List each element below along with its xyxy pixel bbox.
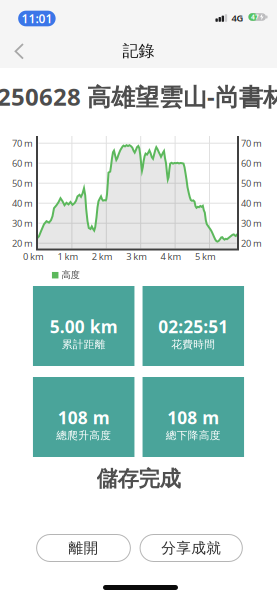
staticText: 11:01 (21, 10, 52, 26)
staticText: 4 km (161, 250, 182, 263)
staticText: 20 m (12, 237, 33, 249)
staticText: 高度 (61, 269, 79, 281)
staticText: 2 km (92, 250, 113, 263)
staticText: 40 m (12, 197, 33, 209)
staticText: 0 km (23, 250, 44, 263)
staticText: 分享成就 (161, 539, 221, 557)
staticText: 總下降高度 (166, 429, 221, 442)
staticText: 30 m (12, 217, 33, 229)
staticText: 3 km (126, 250, 147, 263)
staticText: 花費時間 (171, 338, 215, 351)
staticText: 5 km (195, 250, 216, 263)
staticText: 108 m (58, 406, 110, 429)
staticText: 累計距離 (62, 338, 106, 351)
staticText: 儲存完成 (96, 466, 180, 492)
button[interactable]: 11:01 (18, 11, 56, 26)
button[interactable]: 離開 (36, 534, 131, 562)
staticText: 47 (251, 13, 259, 21)
staticText: 108 m (167, 406, 219, 429)
staticText: 40 m (241, 197, 262, 209)
staticText: 20 m (241, 237, 262, 249)
staticText: 離開 (68, 539, 98, 557)
staticText: 50 m (241, 177, 262, 189)
staticText: 60 m (241, 157, 262, 169)
button[interactable]: 分享成就 (139, 534, 243, 562)
staticText: 5.00 km (50, 315, 118, 338)
button[interactable]: Back (14, 43, 25, 60)
staticText: 60 m (12, 157, 33, 169)
staticText: 70 m (12, 137, 33, 149)
staticText: 02:25:51 (158, 315, 228, 338)
staticText: 記錄 (122, 41, 154, 61)
staticText: 4G (231, 12, 243, 24)
staticText: 1 km (57, 250, 78, 263)
staticText: 總爬升高度 (56, 429, 111, 442)
staticText: 50 m (12, 177, 33, 189)
staticText: 70 m (241, 137, 262, 149)
staticText: 250628 高雄望雲山-尚書林 (0, 81, 277, 112)
staticText: 30 m (241, 217, 262, 229)
